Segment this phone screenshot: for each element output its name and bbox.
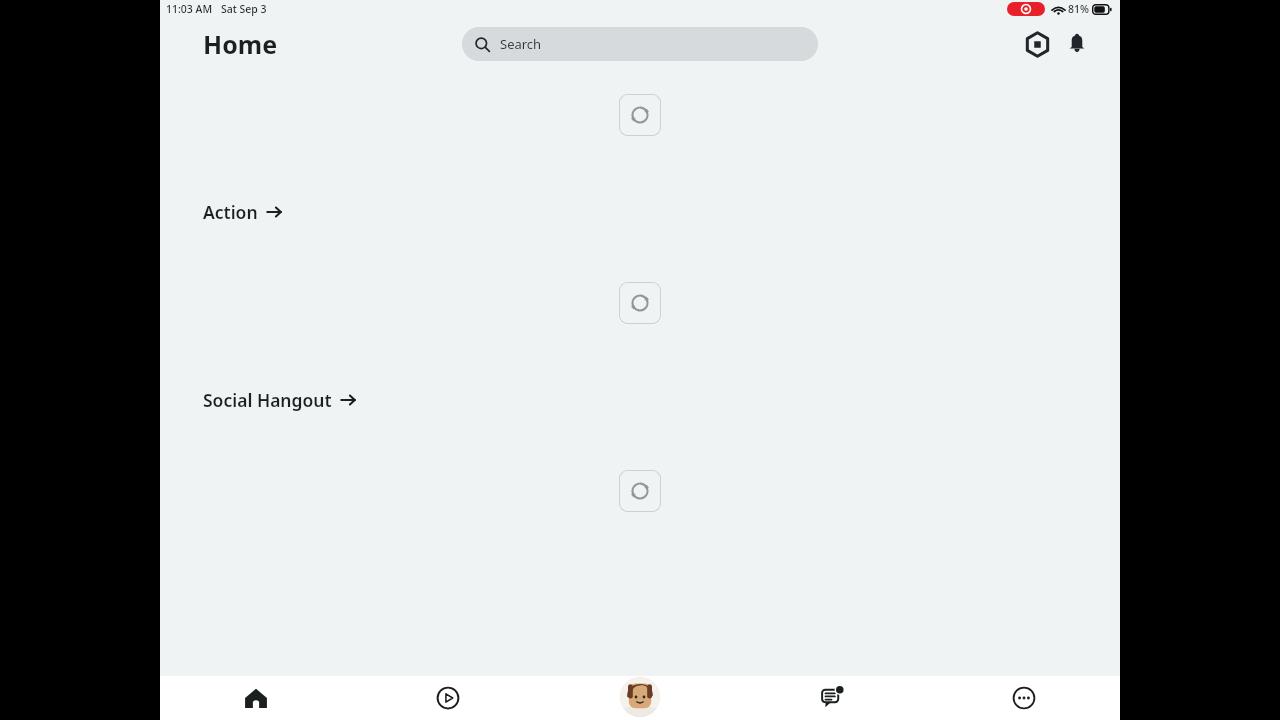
button[interactable]: Avatar: [544, 676, 736, 720]
button[interactable]: Search: [462, 27, 818, 61]
button[interactable]: Discover: [352, 676, 544, 720]
button[interactable]: Home: [160, 676, 352, 720]
staticText: Social Hangout: [203, 388, 332, 412]
button[interactable]: Retry loading: [619, 282, 661, 324]
button[interactable]: Chat: [736, 676, 928, 720]
staticText: Sat Sep 3: [221, 2, 267, 16]
staticText: Home: [203, 27, 278, 61]
staticText: 11:03 AM: [166, 2, 213, 16]
button[interactable]: Notifications: [1060, 27, 1094, 61]
staticText: Search: [500, 35, 542, 53]
button[interactable]: More: [928, 676, 1120, 720]
button[interactable]: Robux: [1020, 27, 1054, 61]
button[interactable]: Social Hangout: [203, 386, 356, 414]
staticText: Action: [203, 200, 258, 224]
staticText: 81%: [1068, 2, 1089, 16]
button[interactable]: Retry loading: [619, 470, 661, 512]
button[interactable]: Action: [203, 198, 282, 226]
button[interactable]: Retry loading: [619, 94, 661, 136]
